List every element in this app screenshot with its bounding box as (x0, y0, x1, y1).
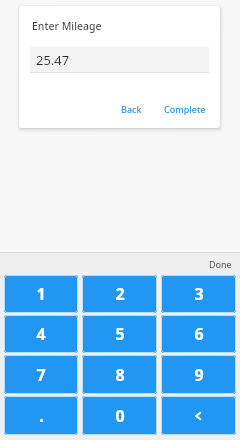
staticText: 9 (194, 364, 204, 386)
button[interactable]: 2 (82, 275, 157, 313)
staticText: 3 (194, 283, 204, 305)
staticText: Enter Mileage (32, 19, 102, 33)
button[interactable]: 4 (4, 315, 78, 353)
button[interactable]: 8 (82, 355, 157, 394)
button[interactable]: 5 (82, 315, 157, 353)
staticText: Complete (164, 103, 206, 115)
staticText: 2 (115, 283, 125, 305)
button[interactable]: 3 (161, 275, 236, 313)
staticText: 4 (36, 323, 46, 345)
staticText: 6 (194, 323, 204, 345)
button[interactable]: 9 (161, 355, 236, 394)
staticText: 0 (115, 405, 125, 427)
button[interactable]: . (4, 396, 78, 435)
button[interactable]: 6 (161, 315, 236, 353)
button[interactable]: Backspace (161, 396, 236, 435)
staticText: . (39, 405, 44, 427)
staticText: Done (209, 258, 232, 270)
button[interactable]: 7 (4, 355, 78, 394)
button[interactable]: 1 (4, 275, 78, 313)
staticText: Back (121, 103, 142, 115)
staticText: 25.47 (36, 51, 70, 69)
staticText: 5 (115, 323, 125, 345)
staticText: 7 (36, 364, 46, 386)
button[interactable]: 25.47 (30, 47, 209, 72)
staticText: 1 (36, 283, 46, 305)
button[interactable]: Done (201, 255, 240, 273)
button[interactable]: Back (114, 99, 149, 119)
staticText: 8 (115, 364, 125, 386)
button[interactable]: Complete (157, 99, 213, 119)
button[interactable]: 0 (82, 396, 157, 435)
